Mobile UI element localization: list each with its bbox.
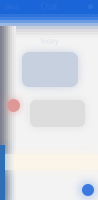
button[interactable]: New message (82, 184, 94, 196)
button[interactable]: Details (75, 3, 93, 11)
staticText: Back (5, 2, 20, 11)
staticText: Today (40, 37, 58, 45)
staticText: Chat (40, 1, 57, 12)
button[interactable]: Back (5, 3, 23, 11)
